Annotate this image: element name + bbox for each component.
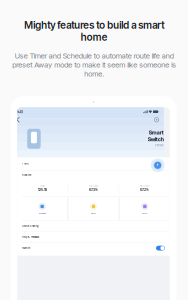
staticText: Device Sharing <box>22 224 39 228</box>
staticText: Runtime <box>22 173 31 177</box>
button[interactable]: Away <box>120 197 170 220</box>
button[interactable]: Favorite <box>17 243 170 253</box>
staticText: Switch <box>148 136 164 142</box>
button[interactable]: Back <box>15 116 21 124</box>
staticText: Timer <box>91 212 96 214</box>
button[interactable]: Device Sharing <box>17 221 170 231</box>
staticText: Help & Feedback <box>22 235 39 239</box>
staticText: Bedroom <box>155 144 164 147</box>
staticText: Smart <box>149 129 164 136</box>
staticText: Away <box>142 212 147 214</box>
button[interactable]: Schedule <box>17 197 67 220</box>
staticText: Use Timer and Schedule to automate route… <box>12 51 176 78</box>
button[interactable]: Power <box>151 158 165 172</box>
button[interactable]: Timer <box>68 197 118 220</box>
staticText: 9:41 <box>16 109 23 114</box>
staticText: Today <box>40 184 45 187</box>
button[interactable]: Settings <box>154 118 159 122</box>
button[interactable]: Help & Feedback <box>17 232 170 242</box>
button[interactable]: Power <box>17 157 170 170</box>
staticText: 67.2% <box>140 188 149 192</box>
staticText: Power <box>22 162 29 165</box>
staticText: Favorite <box>22 246 30 250</box>
staticText: 125.18 <box>38 188 47 192</box>
staticText: Schedule <box>39 212 46 214</box>
staticText: Mighty features to build a smart home <box>24 19 164 43</box>
staticText: This Month <box>139 184 149 187</box>
button[interactable]: Runtime <box>17 170 170 180</box>
staticText: 67.3% <box>89 188 98 192</box>
staticText: This Week <box>89 184 98 187</box>
